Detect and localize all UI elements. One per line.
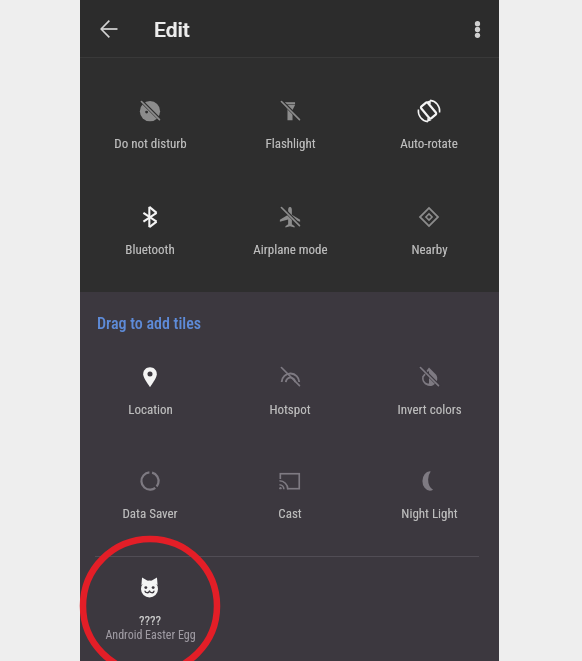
staticText: Bluetooth: [125, 242, 175, 257]
button[interactable]: Do not disturb: [80, 80, 220, 142]
button[interactable]: ????: [80, 557, 220, 653]
staticText: Edit: [154, 18, 190, 43]
staticText: ????: [139, 613, 161, 628]
staticText: Night Light: [401, 506, 458, 521]
button[interactable]: Bluetooth: [80, 186, 220, 248]
staticText: Drag to add tiles: [97, 314, 202, 333]
button[interactable]: Location: [80, 346, 220, 408]
button[interactable]: Invert colors: [359, 346, 499, 408]
button[interactable]: More options: [455, 7, 499, 51]
button[interactable]: Airplane mode: [220, 186, 360, 248]
button[interactable]: Data Saver: [80, 450, 220, 512]
staticText: Android Easter Egg: [105, 628, 196, 642]
staticText: Nearby: [411, 242, 448, 257]
button[interactable]: Back: [86, 6, 132, 52]
staticText: Flashlight: [265, 136, 316, 151]
staticText: Data Saver: [122, 506, 178, 521]
staticText: Auto-rotate: [400, 136, 458, 151]
staticText: Location: [128, 402, 173, 417]
button[interactable]: Cast: [220, 450, 360, 512]
staticText: Do not disturb: [114, 136, 187, 151]
staticText: Airplane mode: [253, 242, 328, 257]
button[interactable]: Drag to add tiles: [97, 311, 202, 336]
button[interactable]: Hotspot: [220, 346, 360, 408]
staticText: Cast: [278, 506, 302, 521]
staticText: Hotspot: [269, 402, 311, 417]
button[interactable]: Flashlight: [220, 80, 360, 142]
staticText: Invert colors: [397, 402, 462, 417]
button[interactable]: Nearby: [359, 186, 499, 248]
button[interactable]: Auto-rotate: [359, 80, 499, 142]
button[interactable]: Night Light: [359, 450, 499, 512]
